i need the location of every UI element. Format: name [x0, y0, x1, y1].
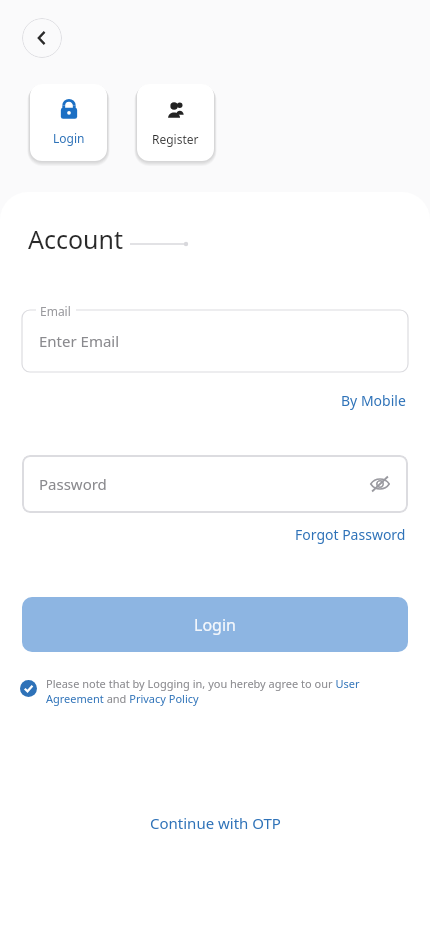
- button[interactable]: By Mobile: [339, 387, 408, 414]
- button[interactable]: Login: [22, 597, 408, 652]
- staticText: Please note that by Logging in, you here…: [46, 676, 416, 706]
- button[interactable]: Register: [137, 84, 214, 161]
- staticText: Password: [39, 474, 107, 494]
- staticText: Forgot Password: [295, 525, 406, 544]
- button[interactable]: Back: [22, 18, 62, 58]
- button[interactable]: Continue with OTP: [140, 807, 291, 839]
- button[interactable]: Password: [22, 455, 408, 513]
- staticText: Register: [152, 131, 199, 147]
- button[interactable]: Agree to terms checkbox: [20, 676, 416, 706]
- staticText: Login: [53, 130, 85, 146]
- staticText: Email: [40, 303, 71, 319]
- button[interactable]: Email: [22, 310, 408, 372]
- button[interactable]: Forgot Password: [293, 521, 408, 548]
- staticText: Login: [194, 614, 236, 636]
- button[interactable]: Show password: [366, 470, 394, 498]
- button[interactable]: Login: [30, 84, 107, 161]
- staticText: By Mobile: [341, 391, 406, 410]
- staticText: Account: [28, 222, 124, 256]
- other: Agree to terms checkbox: [20, 680, 37, 697]
- staticText: Enter Email: [39, 331, 120, 351]
- staticText: Continue with OTP: [150, 813, 281, 833]
